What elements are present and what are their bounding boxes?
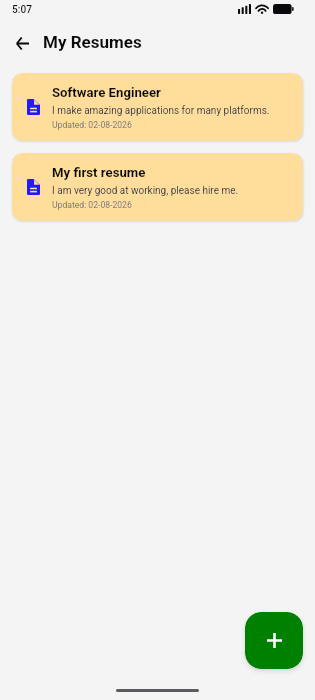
staticText: Software Engineer [52,85,161,100]
staticText: My first resume [52,165,146,180]
button[interactable]: Software Engineer [12,73,303,141]
staticText: Updated: 02-08-2026 [52,120,132,130]
staticText: Updated: 02-08-2026 [52,200,132,210]
button[interactable]: My first resume [12,153,303,221]
staticText: I make amazing applications for many pla… [52,105,270,117]
staticText: My Resumes [43,32,142,52]
button[interactable]: Back [6,27,39,60]
staticText: 5:07 [12,4,32,16]
button[interactable]: Add resume [245,612,303,669]
staticText: I am very good at working, please hire m… [52,185,239,197]
